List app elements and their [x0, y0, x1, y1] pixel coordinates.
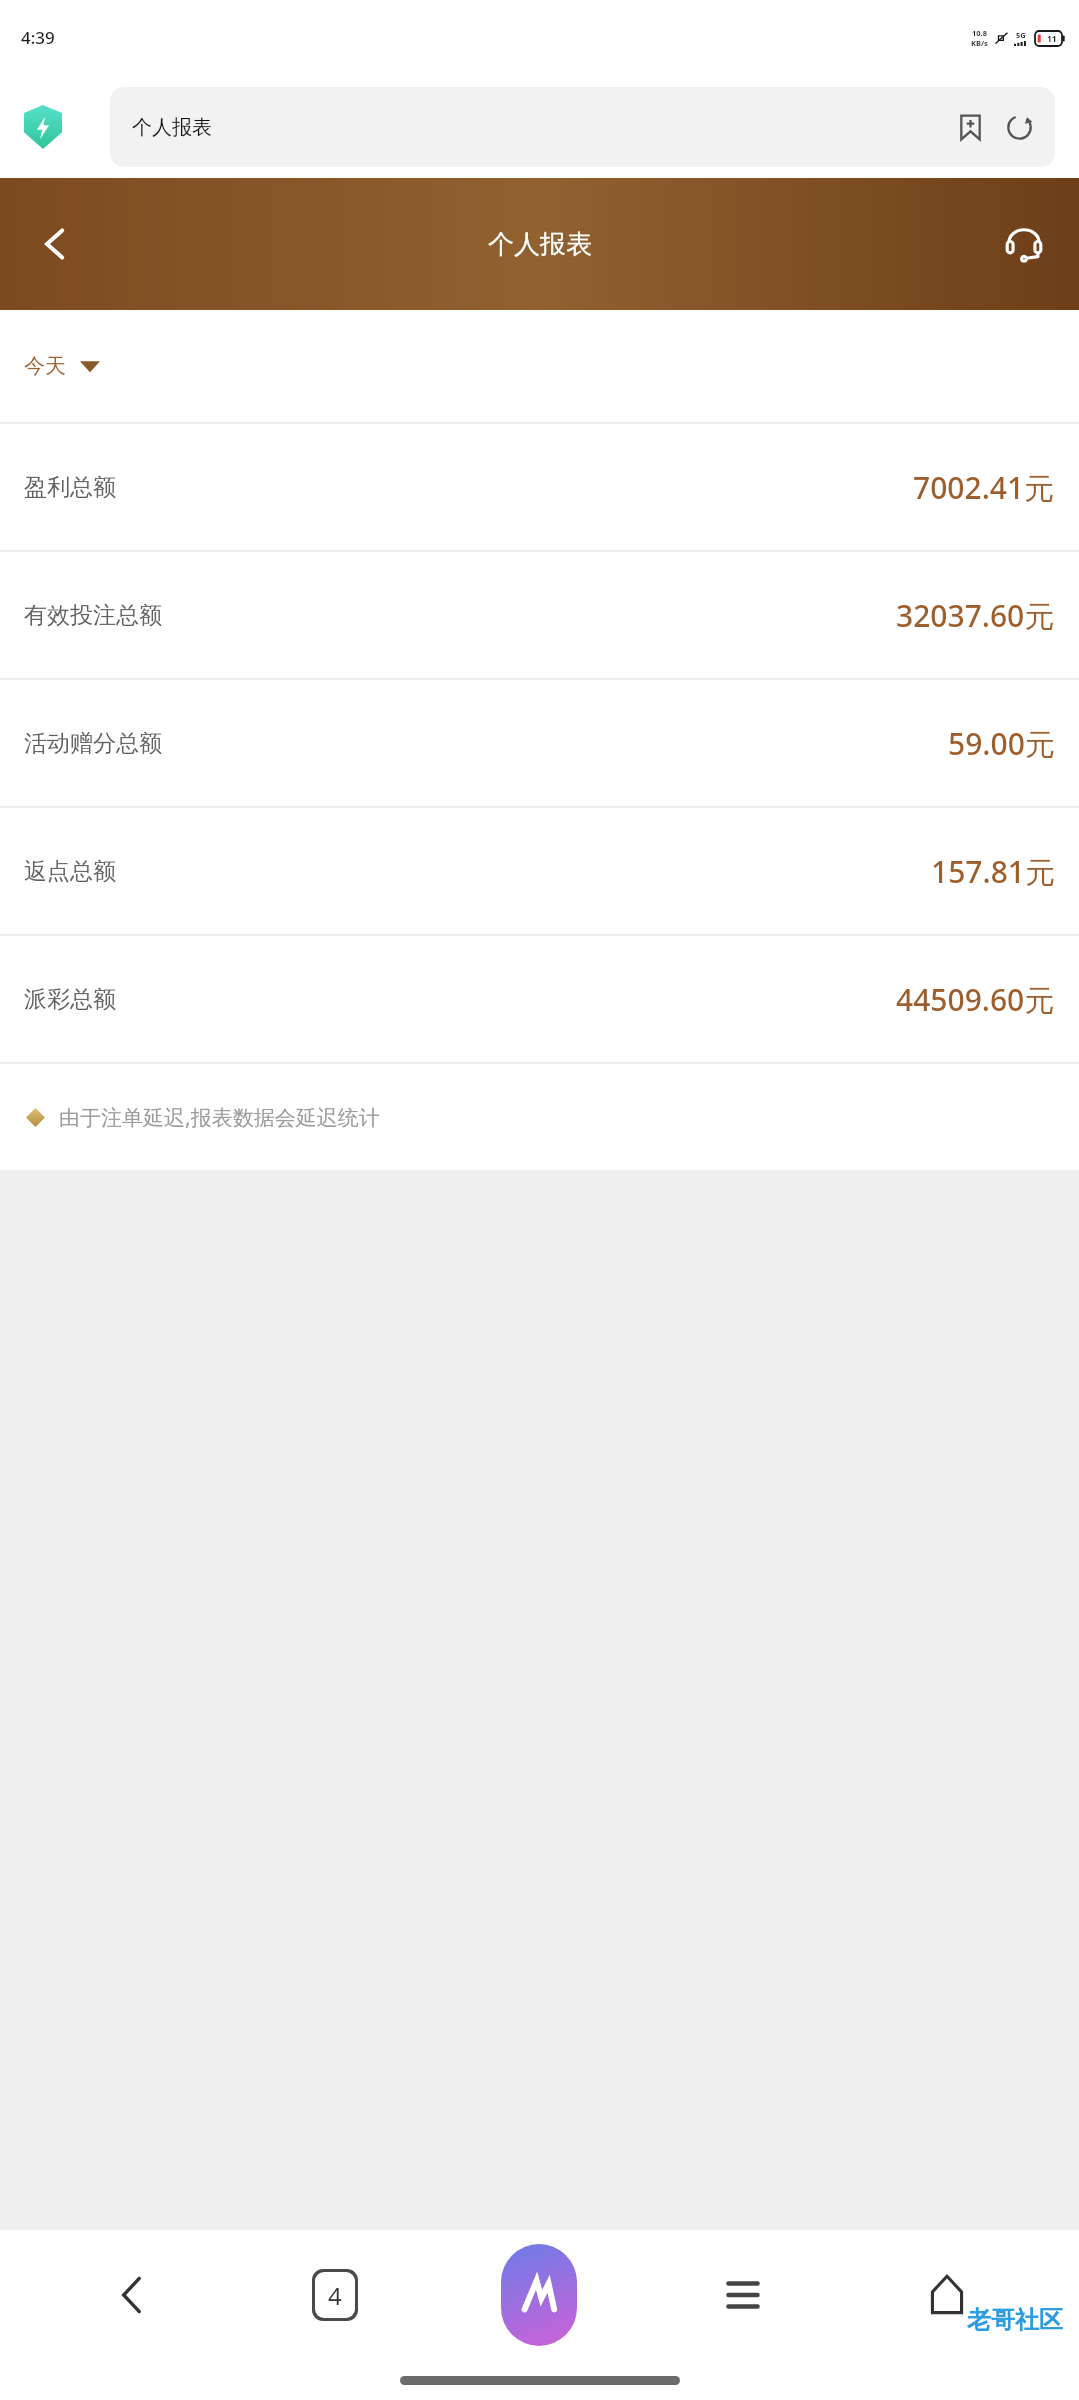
button[interactable]: Refresh: [1006, 114, 1033, 141]
button[interactable]: Customer service: [969, 178, 1079, 310]
button[interactable]: Back: [0, 178, 110, 310]
button[interactable]: Tabs: [233, 2230, 437, 2360]
button[interactable]: 有效投注总额: [0, 552, 1079, 678]
button[interactable]: 盈利总额: [0, 424, 1079, 550]
button[interactable]: 活动赠分总额: [0, 680, 1079, 806]
staticText: 32037.60元: [896, 595, 1055, 636]
button[interactable]: 返点总额: [0, 808, 1079, 934]
staticText: 4:39: [21, 26, 55, 49]
staticText: 5G: [1016, 30, 1026, 40]
staticText: 老哥社区: [967, 2305, 1063, 2335]
button[interactable]: Bookmark: [957, 114, 984, 141]
staticText: 盈利总额: [24, 473, 116, 502]
button[interactable]: 今天: [0, 310, 1079, 422]
staticText: 有效投注总额: [24, 601, 162, 630]
staticText: 由于注单延迟,报表数据会延迟统计: [59, 1103, 380, 1132]
staticText: 59.00元: [948, 723, 1055, 764]
button[interactable]: Home app: [437, 2230, 641, 2360]
button[interactable]: 派彩总额: [0, 936, 1079, 1062]
button[interactable]: Back: [30, 2230, 233, 2360]
other: Security: [24, 105, 62, 149]
staticText: KB/s: [971, 38, 988, 48]
staticText: 派彩总额: [24, 985, 116, 1014]
staticText: 157.81元: [931, 851, 1055, 892]
button[interactable]: Menu: [641, 2230, 845, 2360]
staticText: 44509.60元: [896, 979, 1055, 1020]
staticText: 今天: [24, 353, 66, 379]
staticText: 7002.41元: [913, 467, 1055, 508]
button[interactable]: Home: [845, 2230, 1049, 2360]
staticText: 个人报表: [132, 115, 212, 140]
button[interactable]: 个人报表: [110, 87, 1055, 167]
staticText: 个人报表: [488, 228, 592, 261]
staticText: 11: [1047, 33, 1057, 45]
staticText: 10.8: [972, 28, 987, 38]
staticText: 4: [328, 2279, 342, 2312]
staticText: 活动赠分总额: [24, 729, 162, 758]
staticText: 返点总额: [24, 857, 116, 886]
